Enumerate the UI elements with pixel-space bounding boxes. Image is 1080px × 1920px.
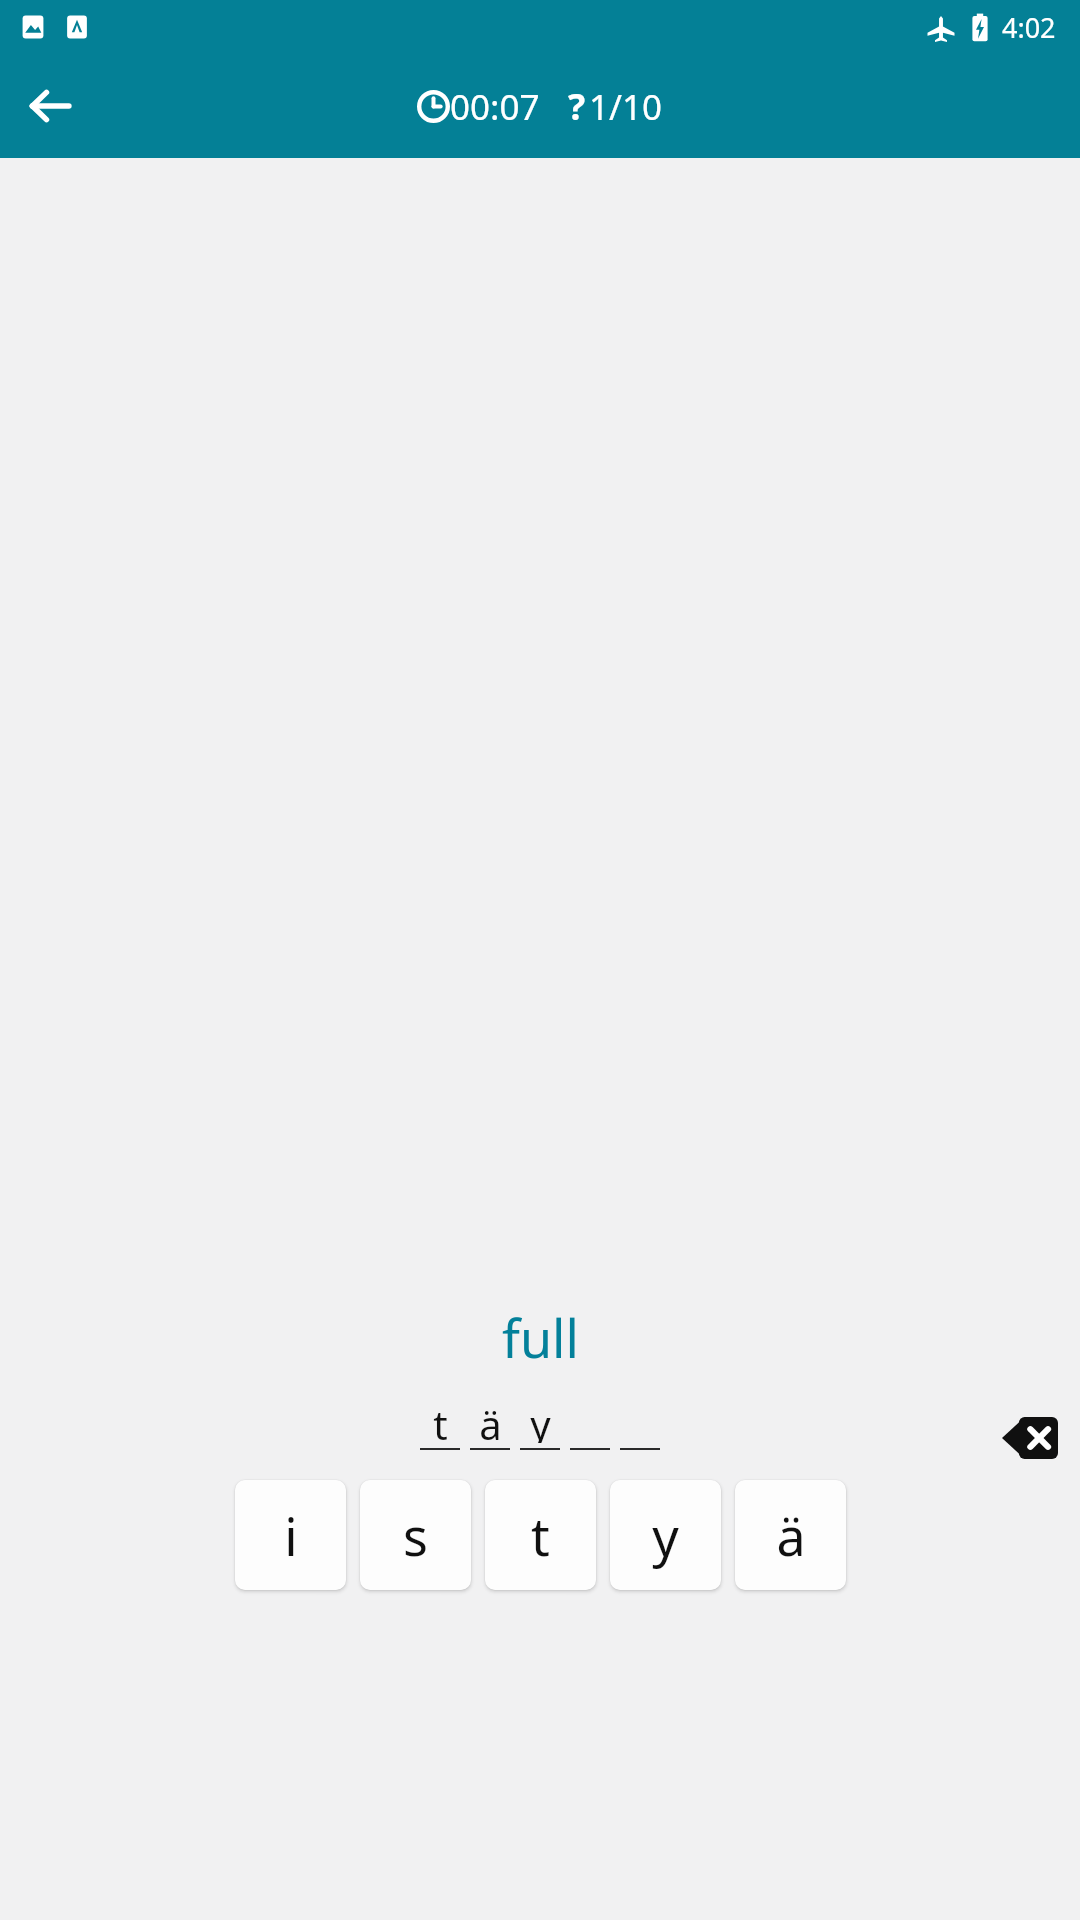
staticText: i	[284, 1500, 298, 1571]
button[interactable]: y	[610, 1480, 721, 1590]
staticText: t	[531, 1500, 550, 1571]
button[interactable]: t	[485, 1480, 596, 1590]
staticText: t	[433, 1397, 448, 1443]
staticText: 00:07	[450, 83, 540, 131]
staticText: ?	[568, 82, 586, 131]
staticText: y	[652, 1500, 679, 1571]
button[interactable]: i	[235, 1480, 346, 1590]
button[interactable]: ä	[735, 1480, 846, 1590]
staticText: full	[502, 1302, 579, 1373]
button[interactable]: s	[360, 1480, 471, 1590]
button[interactable]: Backspace	[994, 1402, 1066, 1474]
staticText: 4:02	[1002, 9, 1056, 46]
staticText: ä	[776, 1500, 806, 1571]
button[interactable]: Back	[10, 66, 90, 146]
staticText: y	[530, 1397, 551, 1443]
staticText: s	[403, 1500, 428, 1571]
staticText: 1/10	[589, 83, 663, 131]
staticText: ä	[479, 1397, 502, 1443]
